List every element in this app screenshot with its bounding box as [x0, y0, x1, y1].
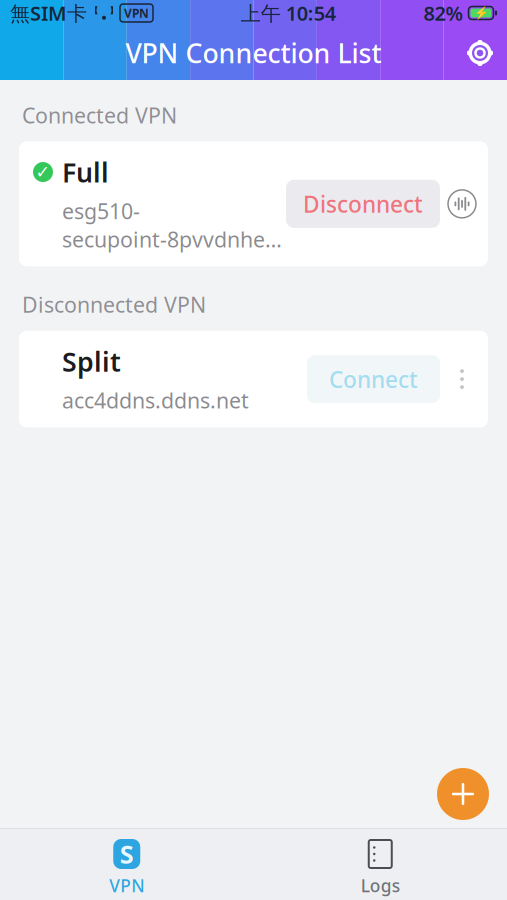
button[interactable]: Add VPN connection	[431, 762, 495, 826]
staticText: acc4ddns.ddns.net	[62, 386, 249, 414]
staticText: esg510-secupoint-8pvvdnhe…	[62, 197, 282, 253]
staticText: 上午 10:54	[241, 0, 336, 26]
staticText: S	[120, 837, 134, 871]
button[interactable]: S	[0, 829, 253, 900]
button[interactable]: Traffic statistics	[440, 182, 484, 226]
staticText: ✓	[35, 162, 50, 182]
staticText: VPN	[124, 5, 149, 21]
staticText: VPN Connection List	[125, 35, 381, 71]
staticText: Split	[62, 344, 121, 379]
button[interactable]: More options	[440, 357, 484, 401]
button[interactable]: Connect	[307, 355, 440, 403]
button[interactable]: Settings	[453, 26, 507, 80]
staticText: Logs	[361, 874, 400, 897]
staticText: VPN	[109, 874, 144, 897]
staticText: Disconnect	[303, 189, 423, 219]
staticText: Connected VPN	[22, 101, 177, 129]
staticText: Disconnected VPN	[22, 290, 206, 319]
staticText: 82%	[423, 0, 463, 26]
staticText: ⚡	[473, 6, 488, 20]
staticText: Full	[62, 154, 109, 190]
button[interactable]: Logs	[253, 829, 507, 900]
button[interactable]: Disconnect	[286, 180, 440, 228]
staticText: Connect	[329, 364, 418, 394]
staticText: 無SIM卡	[10, 0, 87, 26]
